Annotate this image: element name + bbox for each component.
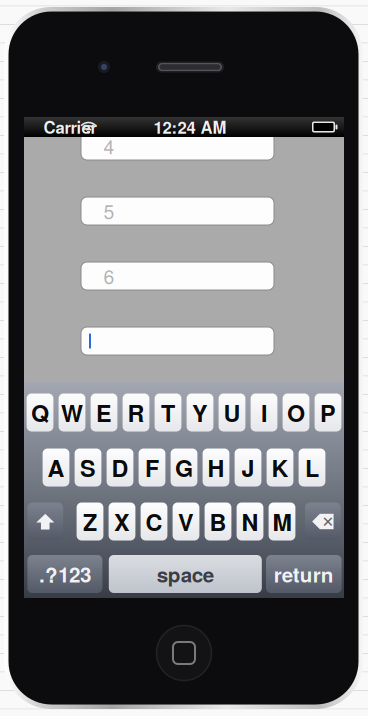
staticText: 5 [103,197,114,225]
button[interactable]: I [251,393,277,431]
staticText: .?123 [39,559,91,589]
staticText: Y [192,396,208,429]
button[interactable]: S [75,448,101,486]
button[interactable]: Z [77,502,103,540]
staticText: space [157,559,214,589]
staticText: G [175,451,193,484]
button[interactable]: D [107,448,133,486]
staticText: 4 [103,132,114,160]
button[interactable]: Delete [305,502,341,540]
staticText: D [111,451,128,484]
staticText: W [61,396,83,429]
staticText: H [207,451,224,484]
staticText: J [241,451,254,484]
button[interactable]: L [299,448,325,486]
button[interactable]: O [283,393,309,431]
button[interactable] [81,327,274,355]
staticText: R [127,396,144,429]
staticText: S [80,451,96,484]
staticText: 12:24 AM [153,115,226,139]
button[interactable]: .?123 [27,555,102,593]
staticText: E [96,396,112,429]
button[interactable]: W [59,393,85,431]
staticText: P [320,396,336,429]
button[interactable]: B [205,502,231,540]
button[interactable]: Home [156,625,212,681]
button[interactable]: space [109,555,262,593]
staticText: L [305,451,319,484]
staticText: X [114,505,130,538]
staticText: V [178,505,194,538]
staticText: I [261,396,267,429]
button[interactable]: V [173,502,199,540]
button[interactable]: X [109,502,135,540]
staticText: ✕ [322,513,334,531]
button[interactable]: T [155,393,181,431]
button[interactable]: C [141,502,167,540]
button[interactable]: K [267,448,293,486]
staticText: A [47,451,64,484]
staticText: Carrier [43,115,96,139]
staticText: M [272,505,291,538]
button[interactable]: 4 [81,132,274,160]
staticText: C [145,505,162,538]
button[interactable]: J [235,448,261,486]
button[interactable]: F [139,448,165,486]
button[interactable]: 6 [81,262,274,290]
button[interactable]: G [171,448,197,486]
staticText: Q [31,396,49,429]
button[interactable]: E [91,393,117,431]
button[interactable]: R [123,393,149,431]
button[interactable]: U [219,393,245,431]
staticText: K [271,451,288,484]
button[interactable]: Shift [27,502,63,540]
staticText: T [161,396,175,429]
button[interactable]: return [266,555,342,593]
button[interactable]: 5 [81,197,274,225]
staticText: B [209,505,226,538]
button[interactable]: H [203,448,229,486]
button[interactable]: M [269,502,295,540]
staticText: return [274,559,334,589]
button[interactable]: P [315,393,341,431]
button[interactable]: Y [187,393,213,431]
button[interactable]: N [237,502,263,540]
staticText: Z [83,505,97,538]
staticText: 6 [103,262,114,290]
button[interactable]: A [43,448,69,486]
staticText: O [287,396,305,429]
staticText: N [241,505,258,538]
button[interactable]: Q [27,393,53,431]
staticText: U [223,396,240,429]
staticText: F [145,451,159,484]
